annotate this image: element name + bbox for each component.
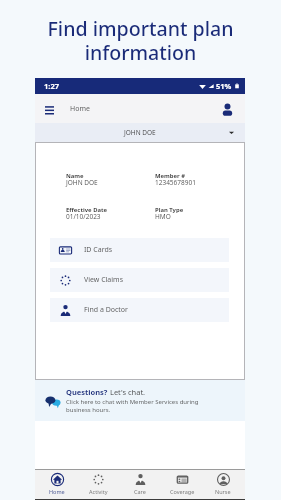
button[interactable]: Home bbox=[37, 470, 77, 499]
staticText: HMO bbox=[155, 212, 171, 221]
staticText: Coverage bbox=[170, 488, 195, 495]
staticText: Click here to chat with Member Services … bbox=[66, 398, 199, 414]
staticText: Home bbox=[70, 104, 90, 114]
staticText: Questions? bbox=[66, 387, 108, 397]
button[interactable]: Menu bbox=[40, 100, 58, 118]
staticText: JOHN DOE bbox=[66, 178, 98, 187]
staticText: Let's chat. bbox=[108, 387, 146, 397]
staticText: Plan Type bbox=[155, 206, 184, 214]
button[interactable]: Nurse bbox=[203, 470, 243, 499]
staticText: Nurse bbox=[215, 488, 231, 495]
staticText: 12345678901 bbox=[155, 178, 196, 187]
button[interactable]: Care bbox=[120, 470, 160, 499]
staticText: Care bbox=[134, 488, 146, 495]
staticText: Activity bbox=[89, 488, 108, 495]
staticText: 1:27 bbox=[44, 81, 59, 91]
staticText: Find a Doctor bbox=[84, 305, 128, 315]
staticText: Name bbox=[66, 172, 84, 180]
staticText: Find important plan information bbox=[0, 15, 281, 66]
button[interactable]: ID Cards bbox=[50, 238, 229, 262]
button[interactable]: Activity bbox=[78, 470, 118, 499]
staticText: Home bbox=[49, 488, 65, 495]
button[interactable]: Questions? bbox=[35, 380, 245, 421]
button[interactable]: Find a Doctor bbox=[50, 298, 229, 322]
button[interactable]: View Claims bbox=[50, 268, 229, 292]
button[interactable]: JOHN DOE bbox=[35, 123, 245, 142]
staticText: ID Cards bbox=[84, 245, 113, 255]
staticText: 51% bbox=[216, 81, 232, 91]
staticText: Effective Date bbox=[66, 206, 108, 214]
button[interactable]: Profile bbox=[218, 100, 236, 118]
button[interactable]: Coverage bbox=[162, 470, 202, 499]
staticText: View Claims bbox=[84, 275, 123, 285]
staticText: 01/10/2023 bbox=[66, 212, 101, 221]
staticText: Member # bbox=[155, 172, 186, 180]
staticText: JOHN DOE bbox=[124, 128, 156, 137]
